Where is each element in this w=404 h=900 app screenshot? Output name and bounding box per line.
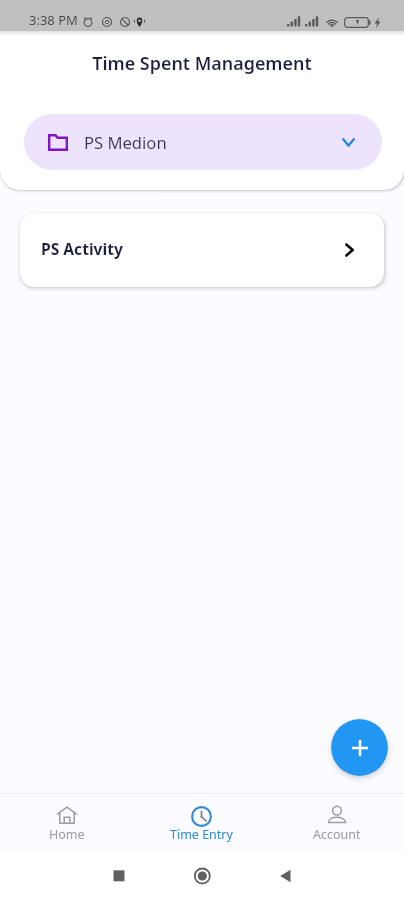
button[interactable]: Time Entry (134, 793, 269, 852)
staticText: Account (313, 826, 361, 843)
staticText: Home (49, 826, 85, 843)
button[interactable]: PS Activity (20, 213, 384, 287)
button[interactable]: Account (269, 793, 404, 852)
staticText: 3:38 PM (29, 11, 78, 29)
staticText: Time Spent Management (92, 51, 312, 75)
staticText: Time Entry (170, 826, 233, 843)
other: System navigation (0, 852, 404, 900)
button[interactable]: Home (0, 793, 134, 852)
staticText: PS Medion (84, 131, 167, 154)
button[interactable]: Add time entry (331, 719, 388, 776)
staticText: PS Activity (41, 238, 123, 259)
button[interactable]: PS Medion (24, 114, 382, 170)
